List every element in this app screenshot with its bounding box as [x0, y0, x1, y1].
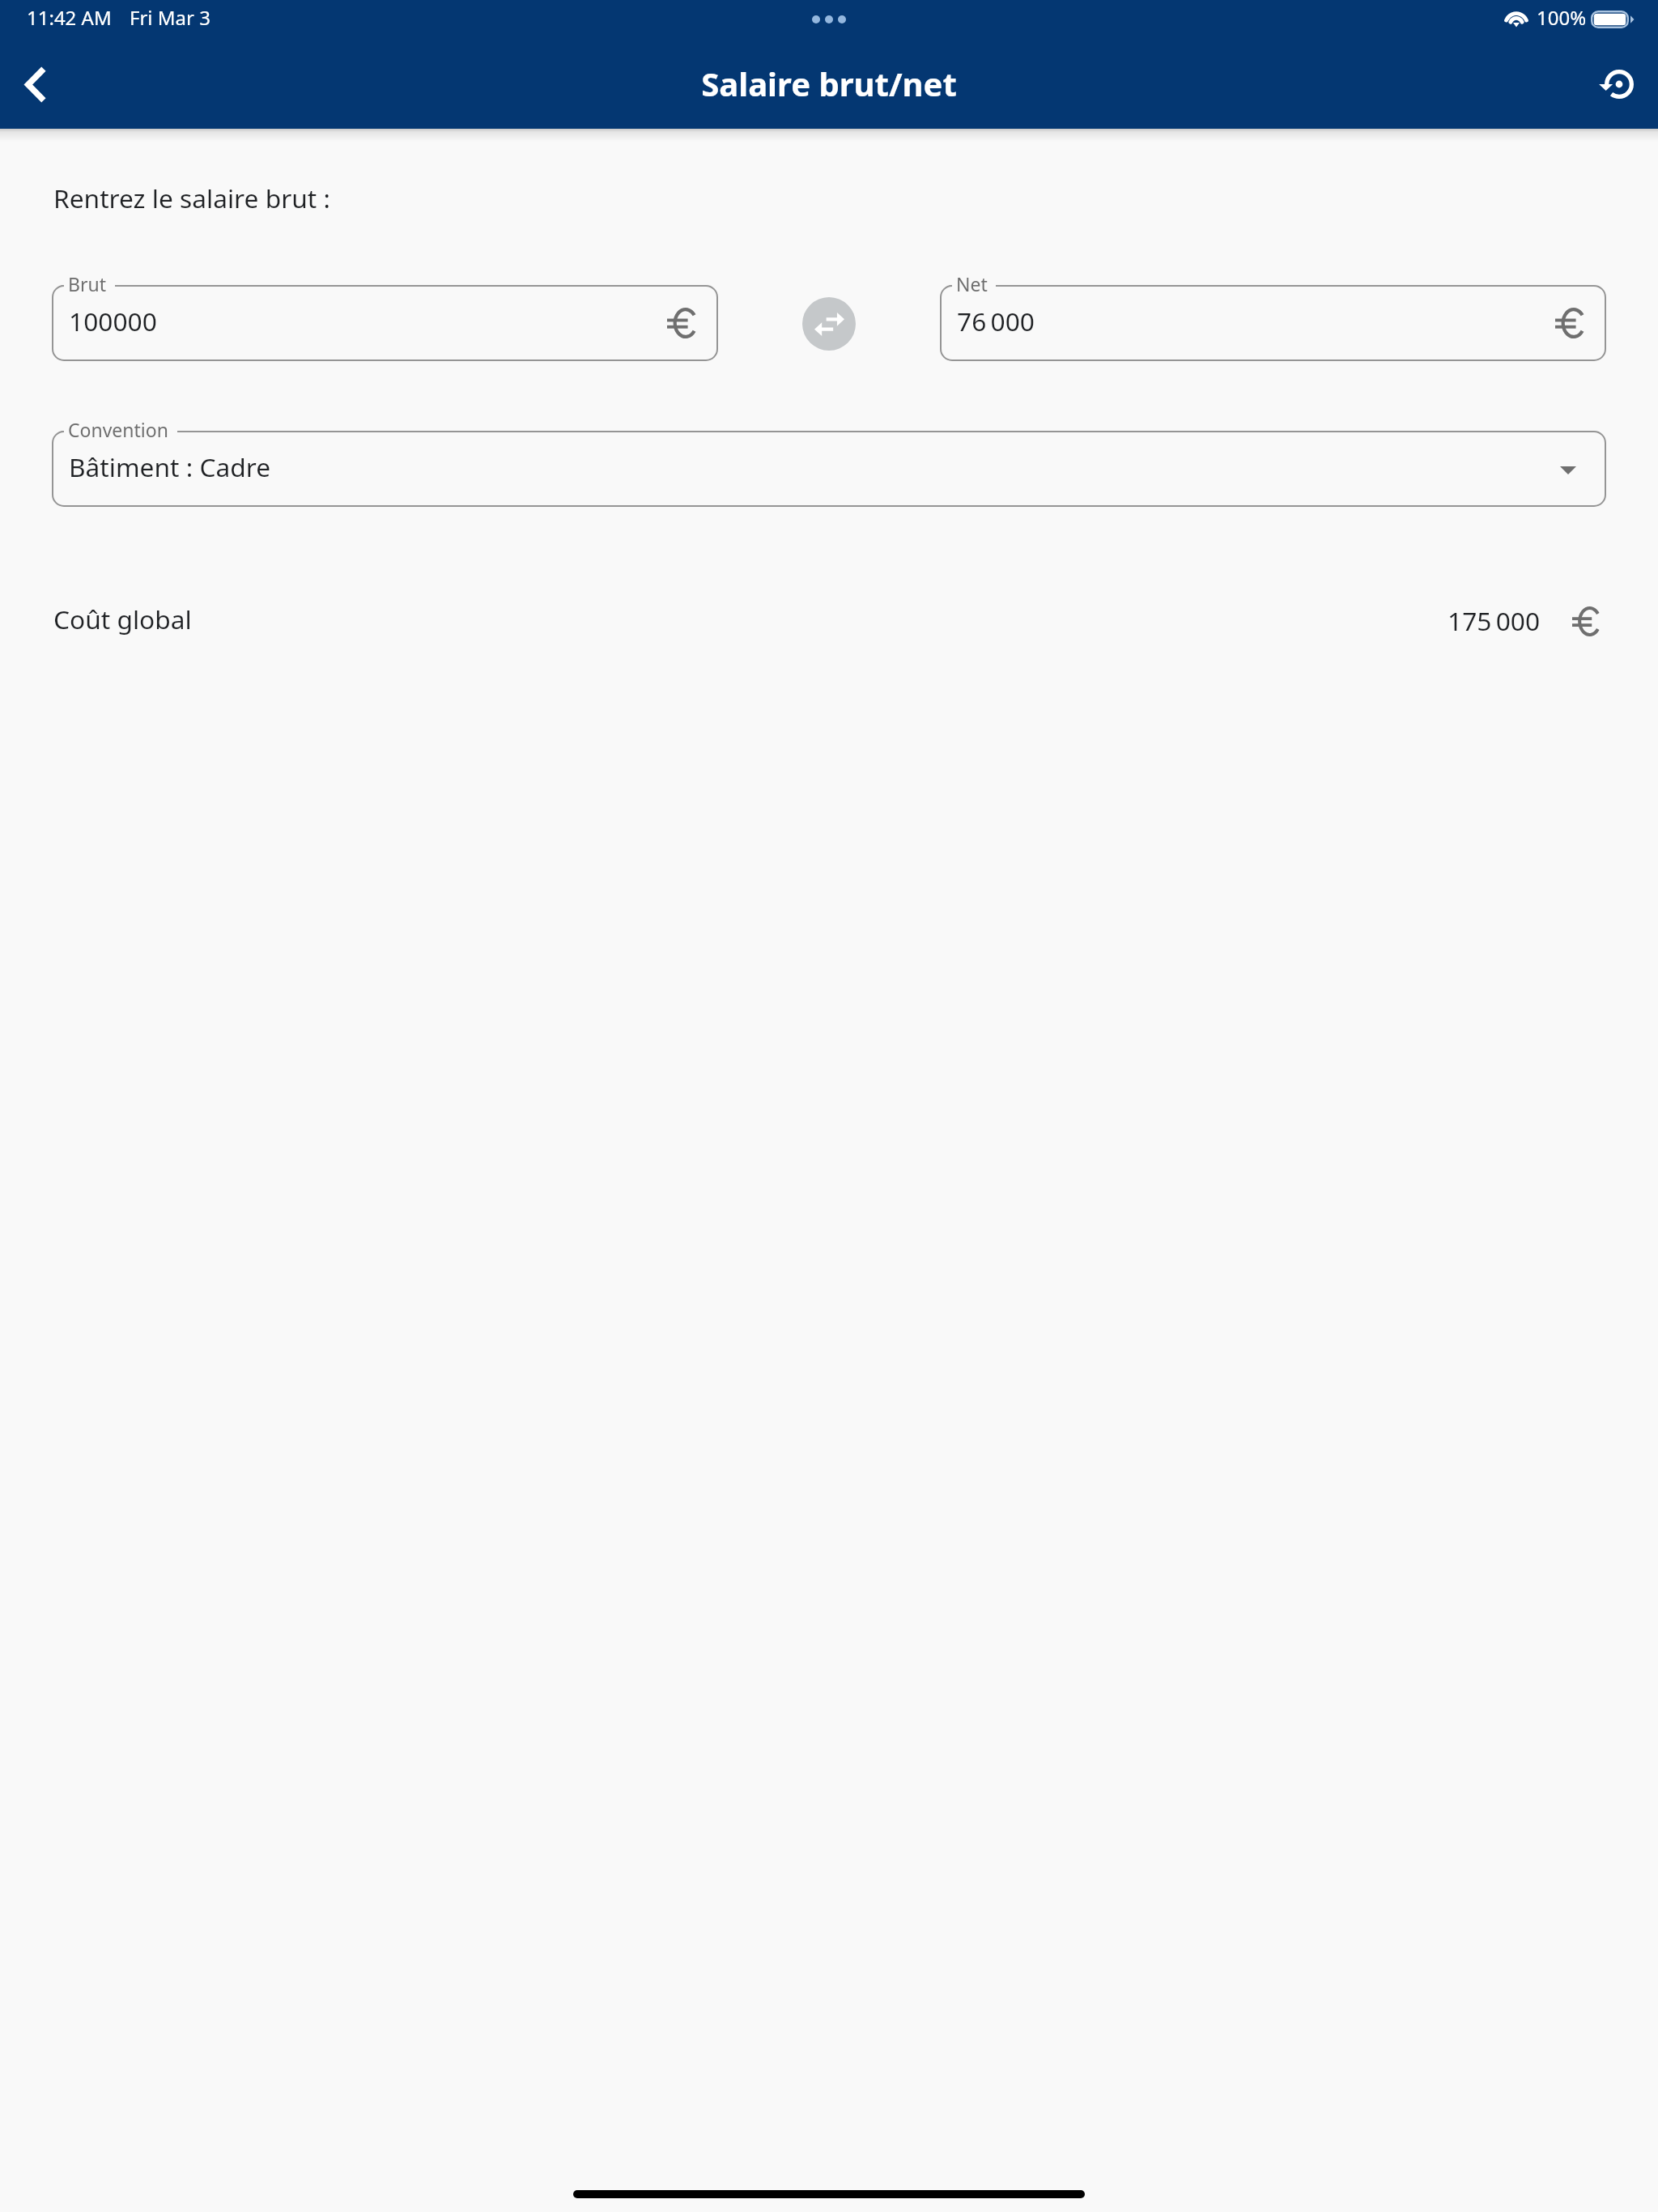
- staticText: Fri Mar 3: [130, 4, 210, 31]
- staticText: 76 000: [957, 304, 1555, 338]
- staticText: Net: [956, 271, 988, 296]
- staticText: Coût global: [53, 602, 192, 636]
- staticText: 100000: [69, 304, 667, 338]
- button[interactable]: Reset: [1588, 53, 1650, 115]
- button[interactable]: Brut: [52, 285, 718, 361]
- staticText: Rentrez le salaire brut :: [53, 181, 331, 215]
- button[interactable]: Back: [4, 53, 66, 115]
- staticText: 175 000: [1448, 603, 1541, 638]
- staticText: Convention: [68, 417, 168, 442]
- staticText: 11:42 AM: [27, 4, 112, 31]
- button[interactable]: Swap: [802, 297, 856, 351]
- staticText: 100%: [1537, 4, 1587, 31]
- staticText: Bâtiment : Cadre: [69, 449, 1570, 484]
- button[interactable]: Convention: [52, 431, 1606, 507]
- staticText: Brut: [68, 271, 106, 296]
- button[interactable]: Net: [940, 285, 1606, 361]
- staticText: Salaire brut/net: [0, 62, 1658, 105]
